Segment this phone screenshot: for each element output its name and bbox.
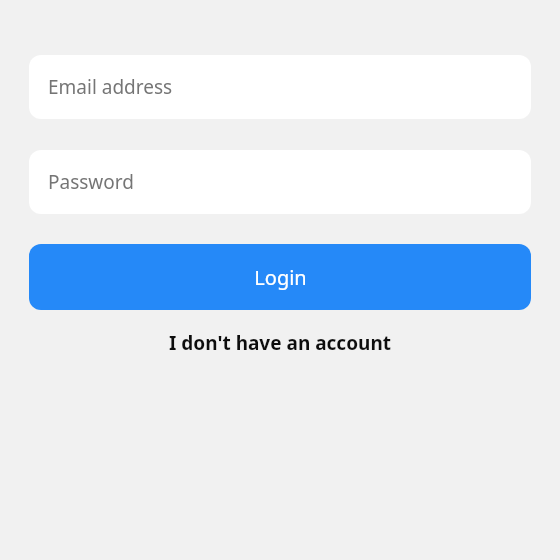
staticText: I don't have an account [169,330,391,356]
staticText: Login [254,264,307,291]
staticText: Email address [48,74,173,100]
staticText: Password [48,169,134,195]
button[interactable]: I don't have an account [29,324,531,362]
button[interactable]: Email address [29,55,531,119]
button[interactable]: Password [29,150,531,214]
button[interactable]: Login [29,244,531,310]
